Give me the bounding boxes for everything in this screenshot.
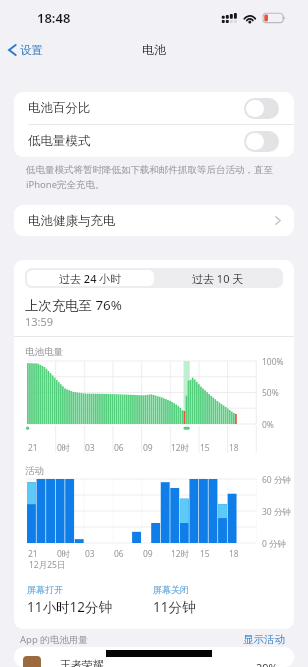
staticText: 屏幕关闭 [153, 584, 189, 595]
staticText: 活动 [25, 465, 44, 477]
staticText: 06 [114, 442, 124, 454]
button[interactable]: 电池健康与充电 [14, 205, 294, 236]
staticText: 03 [85, 442, 95, 454]
staticText: 12月25日 [29, 559, 66, 571]
staticText: 60 分钟 [262, 474, 291, 486]
staticText: 电池 [142, 42, 166, 57]
staticText: 11分钟 [153, 598, 196, 616]
staticText: 100% [262, 356, 284, 368]
staticText: 0% [262, 419, 274, 431]
staticText: 显示活动 [243, 633, 285, 646]
staticText: 15 [200, 548, 210, 560]
staticText: 09 [143, 548, 153, 560]
staticText: 21 [28, 442, 38, 454]
button[interactable]: 低电量模式 [14, 125, 294, 157]
staticText: 11小时12分钟 [27, 598, 112, 616]
staticText: 过去 24 小时 [59, 271, 122, 286]
staticText: 13:59 [25, 314, 54, 329]
staticText: 电池百分比 [28, 100, 91, 116]
staticText: 15 [200, 442, 210, 454]
staticText: 18 [229, 442, 239, 454]
staticText: 设置 [20, 43, 43, 57]
staticText: 屏幕打开 [27, 584, 63, 595]
staticText: 21 [28, 548, 38, 560]
button[interactable]: 设置 [8, 40, 43, 60]
staticText: 09 [143, 442, 153, 454]
staticText: 电池电量 [25, 346, 63, 358]
staticText: 电池健康与充电 [28, 213, 116, 229]
staticText: 18:48 [37, 9, 71, 27]
staticText: 12时 [171, 442, 190, 454]
staticText: 18 [229, 548, 239, 560]
staticText: 12时 [171, 548, 190, 560]
button[interactable]: 过去 10 天 [154, 270, 281, 286]
staticText: 0时 [57, 548, 71, 560]
staticText: 上次充电至 76% [25, 296, 122, 314]
staticText: 06 [114, 548, 124, 560]
staticText: 03 [85, 548, 95, 560]
staticText: 低电量模式 [28, 133, 91, 149]
button[interactable]: 王者荣耀 [14, 647, 294, 667]
button[interactable]: 显示活动 [243, 633, 285, 646]
staticText: 过去 10 天 [192, 271, 244, 286]
staticText: 低电量模式将暂时降低如下载和邮件抓取等后台活动，直至 iPhone完全充电。 [26, 164, 273, 191]
staticText: 0 分钟 [262, 538, 287, 550]
staticText: 王者荣耀 [60, 658, 104, 667]
staticText: 50% [262, 387, 279, 399]
staticText: 0时 [57, 442, 71, 454]
staticText: 30 分钟 [262, 506, 291, 518]
button[interactable]: 过去 24 小时 [27, 270, 154, 286]
button[interactable]: 电池百分比 [14, 92, 294, 124]
staticText: App 的电池用量 [20, 633, 88, 646]
staticText: 29% [256, 660, 278, 667]
